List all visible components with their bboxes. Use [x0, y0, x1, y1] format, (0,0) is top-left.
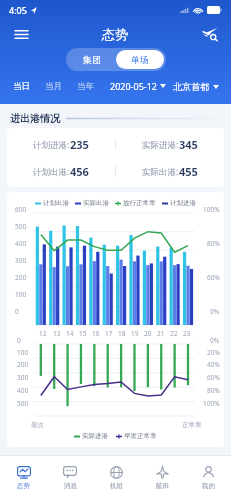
staticText: 20	[144, 329, 152, 338]
staticText: 100	[17, 348, 29, 357]
staticText: 12	[39, 329, 47, 338]
staticText: 100	[15, 290, 27, 299]
button[interactable]: 集团	[68, 50, 116, 69]
staticText: 态势	[17, 482, 30, 490]
staticText: 架次	[31, 421, 44, 429]
staticText: 2020-05-12	[110, 80, 157, 92]
staticText: 455	[179, 164, 198, 178]
staticText: 16	[92, 329, 100, 338]
staticText: 22	[170, 329, 178, 338]
button[interactable]: Menu	[8, 21, 34, 47]
staticText: 400	[15, 239, 27, 248]
staticText: 500	[15, 222, 27, 231]
button[interactable]: 计划出港	[35, 199, 69, 207]
staticText: 4:05	[9, 4, 27, 16]
staticText: 300	[17, 373, 29, 382]
button[interactable]: 消息	[47, 456, 93, 500]
button[interactable]: 实际进港	[74, 432, 108, 440]
staticText: 航班	[156, 482, 169, 490]
button[interactable]: 机组	[93, 456, 139, 500]
staticText: 400	[17, 386, 29, 395]
staticText: 0%	[210, 307, 220, 316]
staticText: 14	[66, 329, 74, 338]
staticText: 600	[15, 205, 27, 214]
staticText: 21	[157, 329, 165, 338]
button[interactable]: 我的	[185, 456, 231, 500]
staticText: 实际进港	[82, 432, 108, 440]
staticText: 15	[79, 329, 87, 338]
staticText: 345	[179, 137, 198, 151]
staticText: 单场	[131, 54, 149, 65]
staticText: 60%	[207, 373, 220, 382]
staticText: 20%	[207, 348, 220, 357]
staticText: 计划进港	[170, 199, 196, 207]
staticText: 18	[118, 329, 126, 338]
staticText: 计划出港:	[33, 166, 70, 178]
staticText: 实际进港:	[142, 139, 179, 151]
staticText: 我的	[202, 482, 215, 490]
button[interactable]: 当年	[75, 79, 96, 94]
staticText: 机组	[110, 482, 123, 490]
staticText: 早发正常率	[124, 432, 157, 440]
staticText: 60%	[207, 273, 220, 282]
staticText: 19	[131, 329, 139, 338]
staticText: 235	[70, 137, 89, 151]
button[interactable]: 北京首都	[173, 79, 220, 94]
button[interactable]: 态势	[0, 456, 47, 500]
button[interactable]: Search flight	[197, 21, 223, 47]
staticText: 100%	[203, 399, 220, 408]
staticText: 正常率	[182, 421, 202, 429]
staticText: 80%	[207, 239, 220, 248]
staticText: 进出港情况	[10, 112, 60, 125]
button[interactable]: 当日	[11, 79, 32, 94]
button[interactable]: 航班	[139, 456, 185, 500]
staticText: 100%	[203, 205, 220, 214]
staticText: 计划出港	[43, 199, 69, 207]
staticText: 13	[53, 329, 61, 338]
staticText: 200	[15, 273, 27, 282]
staticText: 80%	[207, 386, 220, 395]
staticText: 456	[70, 164, 89, 178]
staticText: 0	[17, 336, 21, 345]
staticText: 300	[15, 256, 27, 265]
staticText: 17	[105, 329, 113, 338]
staticText: 0%	[210, 336, 220, 345]
staticText: 集团	[83, 54, 101, 65]
button[interactable]: 放行正常率	[115, 199, 156, 207]
button[interactable]: 计划进港	[162, 199, 196, 207]
staticText: 23	[183, 329, 191, 338]
button[interactable]: 单场	[116, 50, 164, 69]
staticText: 40%	[207, 360, 220, 369]
staticText: 500	[17, 399, 29, 408]
staticText: 0	[15, 307, 19, 316]
staticText: 消息	[64, 482, 77, 490]
staticText: 200	[17, 360, 29, 369]
staticText: 实际出港	[83, 199, 109, 207]
staticText: 北京首都	[173, 81, 209, 92]
button[interactable]: 实际出港	[75, 199, 109, 207]
staticText: 计划进港:	[33, 139, 70, 151]
staticText: 放行正常率	[123, 199, 156, 207]
button[interactable]: 早发正常率	[116, 432, 157, 440]
staticText: 态势	[102, 26, 128, 42]
button[interactable]: 2020-05-12	[110, 78, 166, 94]
staticText: 实际出港:	[142, 166, 179, 178]
button[interactable]: 当月	[43, 79, 64, 94]
